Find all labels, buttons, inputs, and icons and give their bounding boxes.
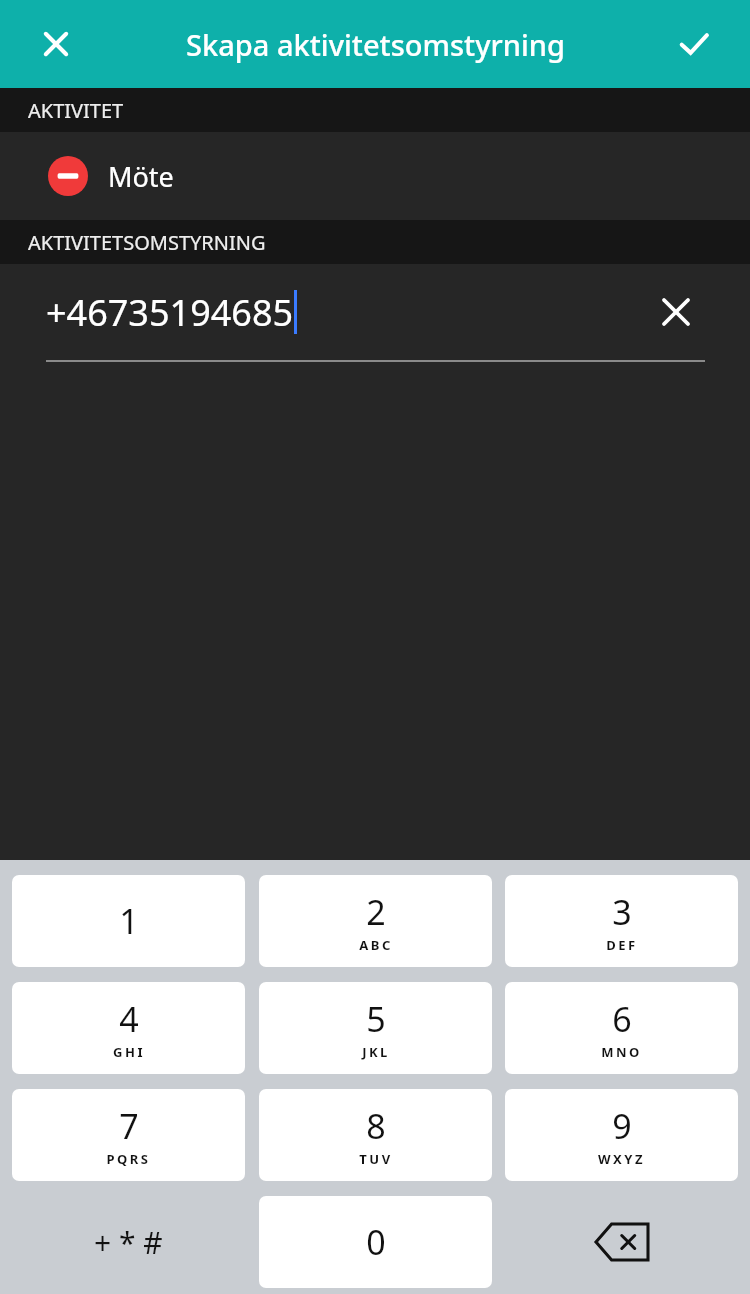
button[interactable]: 5 [259, 982, 492, 1074]
button[interactable]: Radera [505, 1196, 738, 1288]
staticText: AKTIVITET [28, 97, 124, 124]
button[interactable]: 9 [505, 1089, 738, 1181]
button[interactable]: Stäng [14, 2, 98, 86]
staticText: DEF [606, 936, 638, 954]
staticText: 9 [612, 1103, 632, 1149]
staticText: 3 [612, 889, 632, 935]
button[interactable]: 7 [12, 1089, 245, 1181]
button[interactable]: 2 [259, 875, 492, 967]
staticText: 1 [119, 898, 139, 944]
button[interactable]: +46735194685 [0, 264, 750, 360]
button[interactable]: Rensa [648, 284, 704, 340]
staticText: 7 [119, 1103, 139, 1149]
button[interactable]: 3 [505, 875, 738, 967]
staticText: +46735194685 [46, 288, 294, 337]
staticText: 4 [119, 996, 139, 1042]
staticText: GHI [113, 1043, 145, 1061]
staticText: WXYZ [598, 1150, 645, 1168]
button[interactable]: 0 [259, 1196, 492, 1288]
staticText: Möte [108, 158, 174, 195]
staticText: JKL [362, 1043, 390, 1061]
staticText: 5 [366, 996, 386, 1042]
staticText: AKTIVITETSOMSTYRNING [28, 229, 266, 256]
staticText: + * # [94, 1222, 163, 1263]
button[interactable]: Möte [0, 132, 750, 220]
staticText: 0 [366, 1219, 386, 1265]
button[interactable]: 1 [12, 875, 245, 967]
staticText: ABC [359, 936, 393, 954]
button[interactable]: 4 [12, 982, 245, 1074]
button[interactable]: Spara [652, 2, 736, 86]
staticText: PQRS [106, 1150, 151, 1168]
button[interactable]: 8 [259, 1089, 492, 1181]
staticText: 8 [366, 1103, 386, 1149]
staticText: 2 [366, 889, 386, 935]
staticText: TUV [359, 1150, 393, 1168]
button[interactable]: 6 [505, 982, 738, 1074]
button[interactable]: Symboler [12, 1196, 245, 1288]
staticText: Skapa aktivitetsomstyrning [186, 25, 565, 64]
staticText: 6 [612, 996, 632, 1042]
staticText: MNO [601, 1043, 642, 1061]
